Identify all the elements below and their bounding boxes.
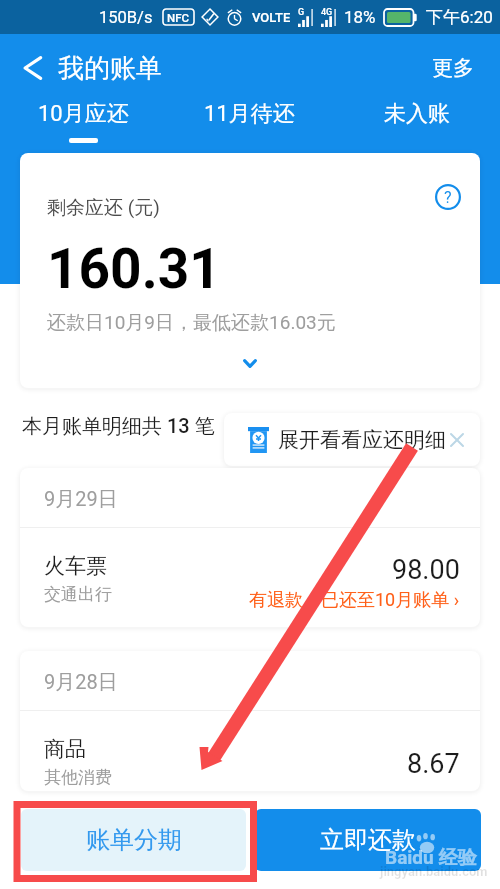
staticText: 火车票	[44, 553, 107, 579]
staticText: VOLTE	[252, 10, 291, 25]
staticText: 有退款，已还至10月账单 ›	[249, 589, 460, 612]
button[interactable]: 账单分期	[21, 809, 246, 871]
staticText: 8.67	[407, 748, 460, 780]
staticText: 其他消费	[44, 767, 112, 788]
button[interactable]: 更多	[406, 39, 500, 97]
staticText: ?	[444, 188, 452, 207]
staticText: 剩余应还 (元)	[47, 196, 160, 220]
button[interactable]: Close	[449, 432, 465, 448]
staticText: 账单分期	[86, 825, 182, 855]
staticText: 更多	[432, 55, 474, 81]
staticText: 我的账单	[58, 52, 162, 85]
staticText: 交通出行	[44, 584, 112, 605]
button[interactable]: Back	[0, 39, 56, 97]
staticText: 18%	[344, 7, 376, 27]
staticText: 下午6:20	[426, 7, 493, 28]
staticText: jingyan.baidu.com	[380, 864, 488, 879]
staticText: 立即还款	[320, 825, 416, 855]
button[interactable]: Help	[435, 184, 461, 210]
button[interactable]: 火车票	[20, 528, 480, 627]
staticText: 11月待还	[204, 100, 295, 128]
staticText: 160.31	[47, 237, 221, 301]
button[interactable]: 未入账	[333, 97, 500, 146]
staticText: 10月应还	[38, 100, 129, 128]
button[interactable]: 11月待还	[166, 97, 333, 146]
staticText: 9月28日	[44, 670, 118, 695]
button[interactable]: 展开看看应还明细	[224, 413, 480, 466]
staticText: 商品	[44, 736, 86, 762]
staticText: 未入账	[384, 100, 450, 128]
button[interactable]: 商品	[20, 711, 480, 791]
button[interactable]: 立即还款	[255, 809, 481, 871]
staticText: 150B/s	[99, 8, 153, 27]
staticText: 4G	[321, 7, 333, 18]
staticText: 展开看看应还明细	[278, 427, 446, 453]
staticText: 98.00	[392, 554, 460, 586]
staticText: 还款日10月9日，最低还款16.03元	[47, 311, 336, 335]
button[interactable]: 10月应还	[0, 97, 166, 146]
button[interactable]: Expand	[235, 348, 265, 378]
staticText: Baidu 经验	[385, 846, 477, 870]
staticText: 本月账单明细共 13 笔	[22, 414, 215, 439]
staticText: G	[298, 7, 305, 18]
staticText: NFC	[167, 11, 190, 24]
staticText: 9月29日	[44, 487, 118, 512]
